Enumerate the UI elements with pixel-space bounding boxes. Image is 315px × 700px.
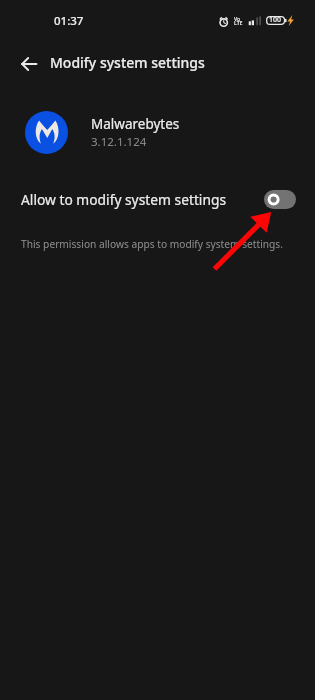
button[interactable]: Allow to modify system settings xyxy=(0,178,315,220)
staticText: 3.12.1.124 xyxy=(91,134,147,150)
staticText: Allow to modify system settings xyxy=(21,190,227,209)
staticText: Malwarebytes xyxy=(91,115,180,133)
staticText: Vo xyxy=(234,15,241,22)
staticText: LTE xyxy=(234,19,243,26)
staticText: This permission allows apps to modify sy… xyxy=(21,237,283,251)
staticText: 100 xyxy=(269,15,282,25)
button[interactable]: Malwarebytes xyxy=(0,103,315,161)
button[interactable]: Allow to modify system settings, off xyxy=(264,190,296,209)
staticText: Modify system settings xyxy=(50,53,205,72)
button[interactable]: Back xyxy=(13,48,45,80)
staticText: 01:37 xyxy=(54,13,84,29)
